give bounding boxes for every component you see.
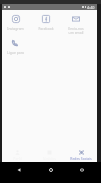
button[interactable]: Ligue para: [0, 34, 30, 58]
button[interactable]: Envia-nos um email: [61, 10, 91, 34]
staticText: 4:40: [87, 5, 95, 10]
button[interactable]: Redes Sociais: [65, 148, 97, 162]
staticText: Ligue para: [7, 50, 24, 55]
button[interactable]: Recent apps: [77, 165, 86, 174]
button[interactable]: Facebook: [31, 10, 61, 34]
staticText: Instagram: [7, 26, 24, 31]
button[interactable]: Back: [14, 165, 23, 174]
staticText: Facebook: [38, 26, 54, 31]
staticText: Redes Sociais: [70, 156, 92, 161]
button[interactable]: Instagram: [0, 10, 31, 34]
button[interactable]: Home: [46, 165, 55, 174]
staticText: Envia-nos um email: [68, 26, 84, 34]
